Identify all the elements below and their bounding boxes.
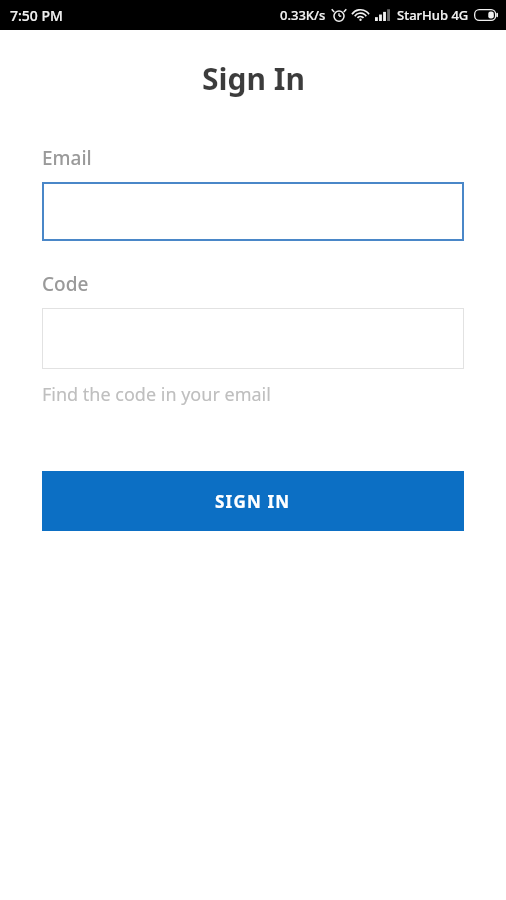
staticText: SIGN IN — [215, 490, 291, 513]
button[interactable]: SIGN IN — [42, 471, 464, 531]
button[interactable] — [42, 182, 464, 241]
staticText: Sign In — [202, 58, 305, 99]
staticText: 0.33K/s — [280, 6, 326, 24]
staticText: StarHub 4G — [397, 6, 469, 24]
staticText: 7:50 PM — [10, 6, 63, 25]
button[interactable] — [42, 308, 464, 369]
staticText: Email — [42, 145, 92, 171]
staticText: Code — [42, 271, 89, 297]
staticText: Find the code in your email — [42, 382, 271, 407]
